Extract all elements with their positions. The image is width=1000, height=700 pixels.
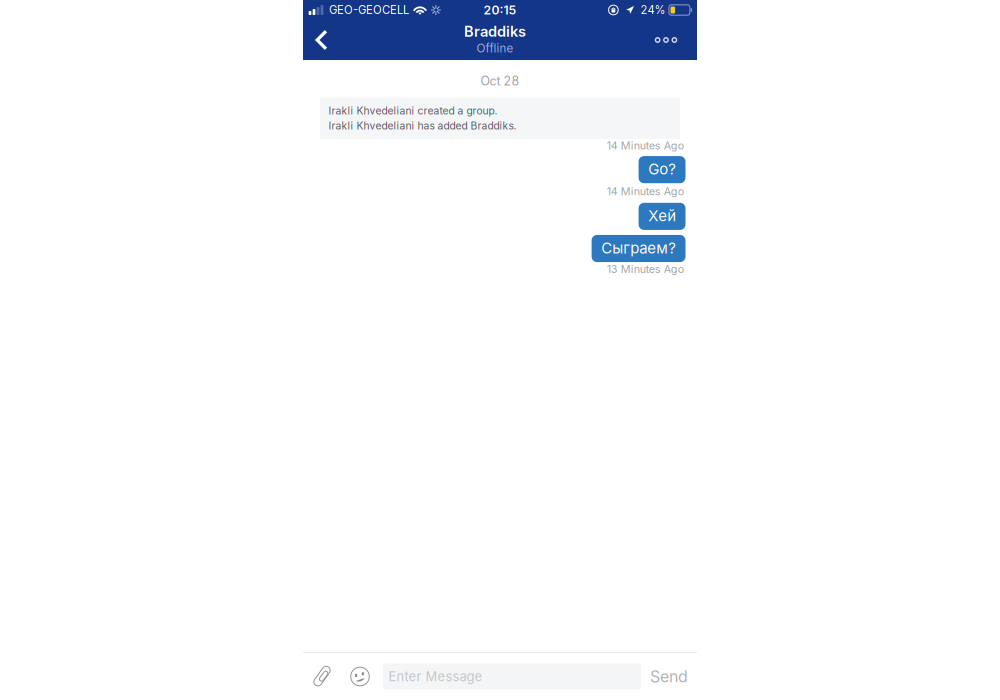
staticText: Oct 28	[480, 73, 519, 88]
staticText: 14 Minutes Ago	[607, 139, 684, 152]
button[interactable]: Go?	[639, 156, 685, 183]
staticText: Send	[650, 667, 688, 686]
staticText: GEO-GEOCELL	[329, 3, 409, 17]
staticText: 13 Minutes Ago	[607, 263, 684, 276]
button[interactable]: Back	[303, 20, 339, 60]
staticText: Offline	[476, 41, 513, 55]
staticText: Go?	[648, 160, 676, 178]
staticText: Enter Message	[388, 669, 482, 684]
staticText: Irakli Khvedeliani has added Braddiks.	[328, 119, 516, 132]
button[interactable]: Attach file	[303, 653, 341, 700]
staticText: Irakli Khvedeliani created a group.	[328, 104, 497, 117]
staticText: Сыграем?	[601, 239, 676, 257]
staticText: 14 Minutes Ago	[607, 185, 684, 198]
staticText: Хей	[648, 207, 676, 225]
button[interactable]: Enter Message	[383, 663, 641, 689]
button[interactable]: Emoji	[341, 653, 379, 700]
staticText: 24%	[640, 3, 665, 17]
button[interactable]: Хей	[639, 203, 685, 230]
staticText: 20:15	[483, 3, 516, 17]
button[interactable]: More options	[644, 20, 688, 60]
button[interactable]: Send	[641, 653, 697, 700]
staticText: Braddiks	[464, 23, 526, 40]
button[interactable]: Сыграем?	[592, 235, 685, 262]
